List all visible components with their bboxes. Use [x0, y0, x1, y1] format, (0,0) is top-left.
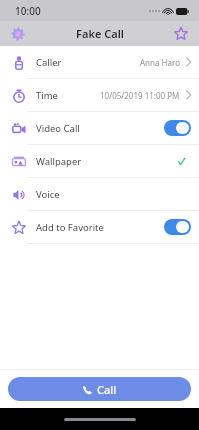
button[interactable]: Call [8, 377, 191, 401]
button[interactable]: Add to Favorite [0, 211, 199, 243]
button[interactable]: Favorites [169, 22, 193, 46]
staticText: Fake Call [76, 26, 124, 41]
button[interactable] [164, 120, 191, 136]
staticText: Anna Haro [140, 57, 180, 68]
staticText: Wallpaper [36, 155, 82, 168]
staticText: Video Call [36, 122, 80, 135]
button[interactable] [164, 219, 191, 235]
button[interactable]: Settings [6, 22, 30, 46]
button[interactable]: Caller [0, 46, 199, 78]
button[interactable]: Time [0, 79, 199, 111]
staticText: Caller [36, 56, 62, 69]
staticText: 10:00 [15, 4, 41, 18]
button[interactable]: Wallpaper [0, 145, 199, 177]
button[interactable]: Voice [0, 178, 199, 210]
button[interactable]: Video Call [0, 112, 199, 144]
staticText: Call [97, 382, 117, 397]
staticText: Time [36, 89, 58, 102]
staticText: 10/05/2019 11:00 PM [100, 90, 180, 101]
staticText: Add to Favorite [36, 221, 104, 234]
staticText: Voice [36, 188, 60, 201]
